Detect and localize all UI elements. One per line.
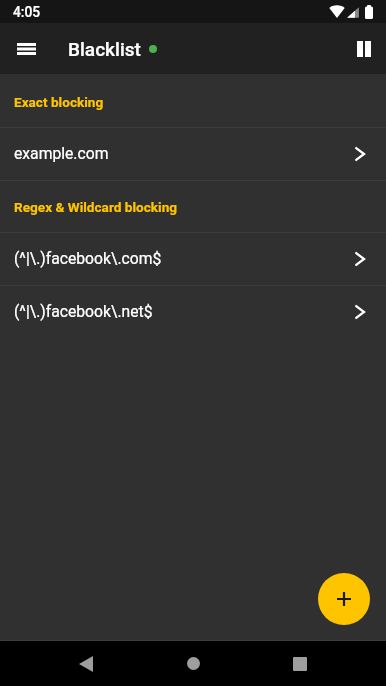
button[interactable]: Recent apps (276, 641, 324, 686)
staticText: example.com (14, 144, 352, 162)
button[interactable]: (^|\.)facebook\.net$ (0, 286, 386, 338)
button[interactable]: Pause blocking (342, 27, 385, 70)
button[interactable]: (^|\.)facebook\.com$ (0, 233, 386, 285)
button[interactable]: example.com (0, 128, 386, 180)
button[interactable]: Open navigation menu (5, 27, 48, 70)
staticText: Regex & Wildcard blocking (14, 199, 178, 215)
staticText: 4:05 (13, 4, 41, 20)
staticText: (^|\.)facebook\.net$ (14, 302, 352, 320)
button[interactable]: Add entry (318, 573, 370, 625)
staticText: Blacklist (68, 38, 141, 60)
button[interactable]: Home (169, 641, 217, 686)
staticText: (^|\.)facebook\.com$ (14, 249, 352, 267)
staticText: Exact blocking (14, 94, 104, 110)
button[interactable]: Back (62, 641, 110, 686)
